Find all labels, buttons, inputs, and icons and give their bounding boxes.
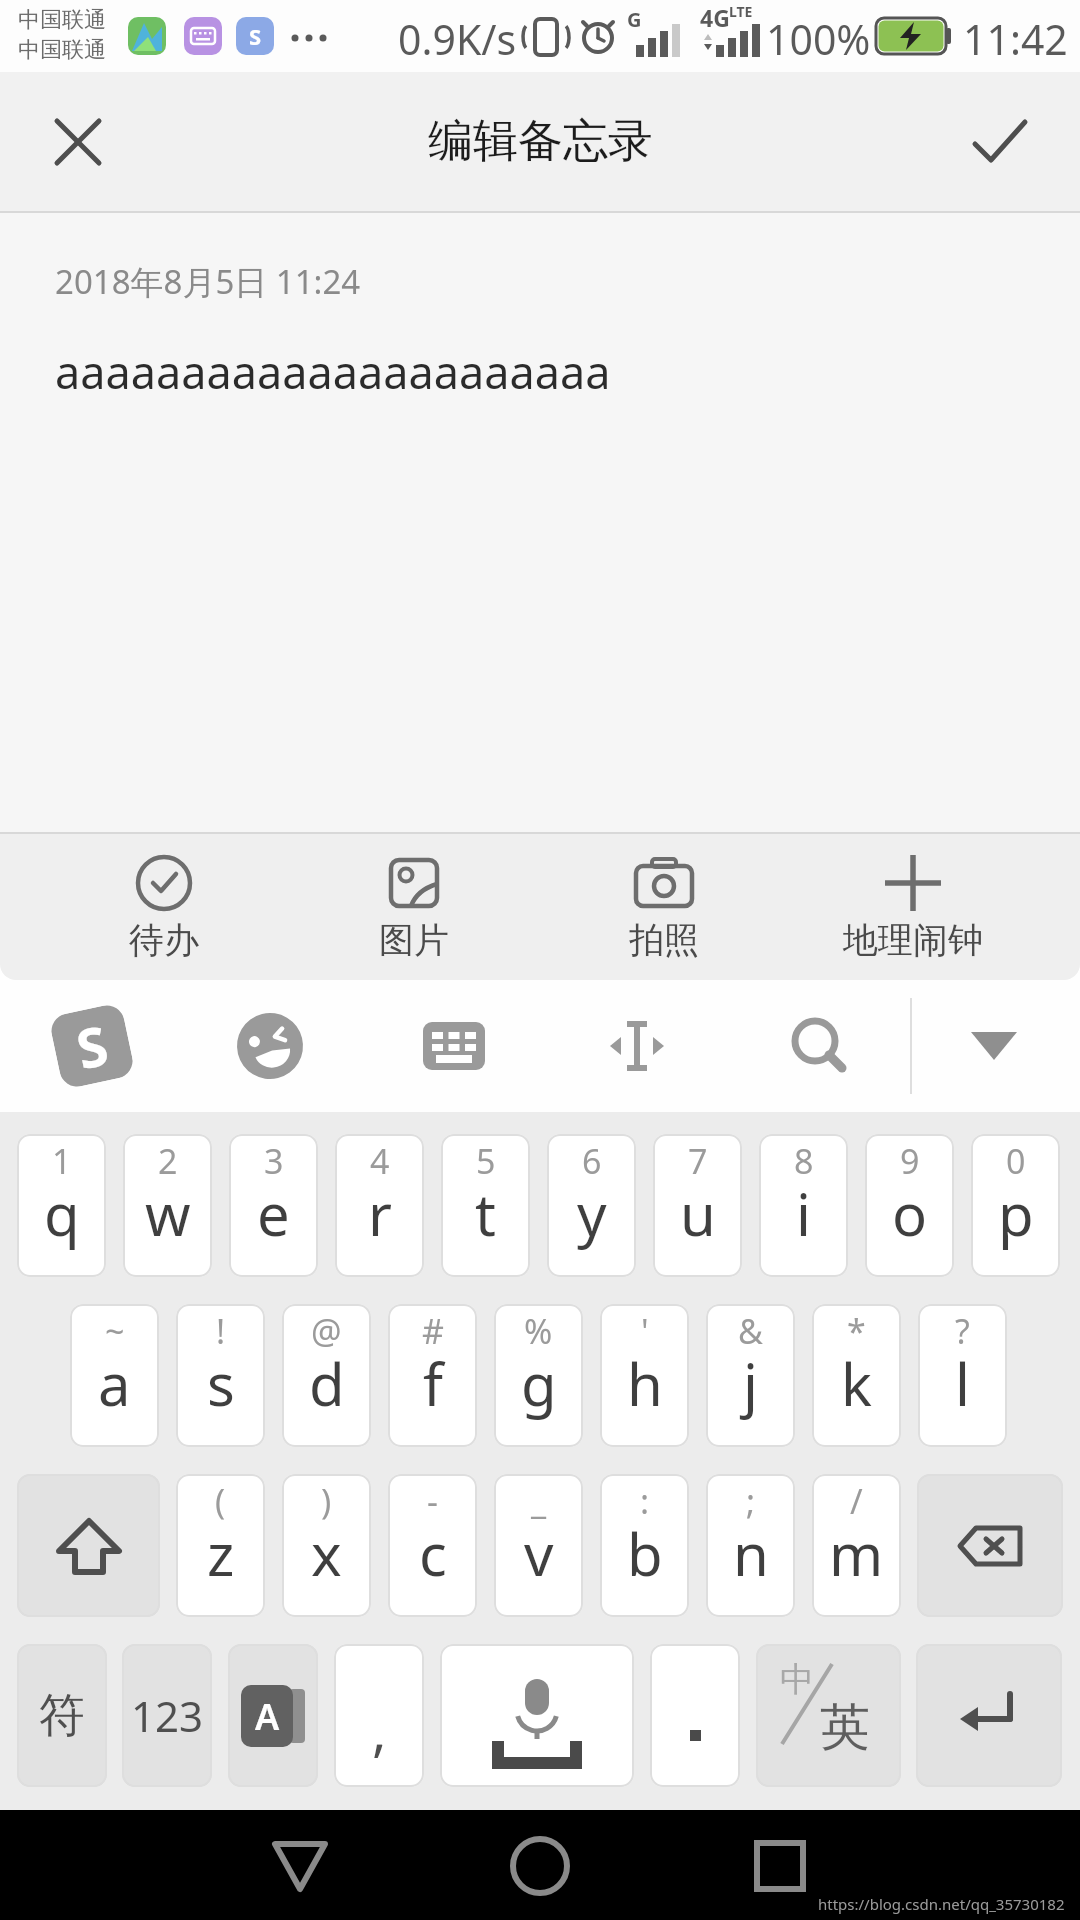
staticText: 4G <box>700 2 730 33</box>
staticText: h <box>627 1344 663 1423</box>
staticText: q <box>44 1174 80 1253</box>
staticText: A <box>255 1692 280 1741</box>
staticText: G <box>627 6 642 33</box>
staticText: & <box>738 1308 763 1354</box>
staticText: ; <box>746 1478 756 1524</box>
staticText: % <box>524 1308 553 1354</box>
staticText: 2 <box>158 1138 178 1184</box>
staticText: ' <box>641 1308 649 1354</box>
staticText: e <box>257 1174 290 1253</box>
staticText: n <box>733 1514 769 1593</box>
staticText: a <box>98 1344 131 1423</box>
staticText: 1 <box>52 1138 72 1184</box>
staticText: 中 <box>780 1658 814 1701</box>
staticText: * <box>847 1308 866 1354</box>
staticText: w <box>145 1174 191 1253</box>
staticText: ! <box>216 1308 226 1354</box>
staticText: 100% <box>766 11 871 67</box>
staticText: 11:42 <box>963 11 1068 67</box>
staticText: 图片 <box>379 918 449 962</box>
staticText: 123 <box>131 1687 204 1744</box>
staticText: 8 <box>794 1138 814 1184</box>
staticText: 待办 <box>129 918 199 962</box>
staticText: ? <box>955 1308 970 1354</box>
staticText: l <box>955 1344 970 1423</box>
staticText: # <box>422 1308 444 1354</box>
staticText: : <box>640 1478 650 1524</box>
staticText: k <box>841 1344 872 1423</box>
staticText: b <box>627 1514 663 1593</box>
staticText: v <box>524 1514 554 1593</box>
staticText: 中国联通 <box>18 36 106 64</box>
staticText: 5 <box>476 1138 496 1184</box>
staticText: f <box>423 1344 443 1423</box>
staticText: u <box>680 1174 716 1253</box>
staticText: t <box>475 1174 496 1253</box>
staticText: r <box>368 1174 392 1253</box>
staticText: i <box>796 1174 811 1253</box>
staticText: 0.9K/s <box>398 11 517 67</box>
staticText: 7 <box>688 1138 708 1184</box>
staticText: p <box>998 1174 1034 1253</box>
staticText: - <box>427 1478 438 1524</box>
staticText: ) <box>321 1478 332 1524</box>
staticText: 9 <box>900 1138 920 1184</box>
staticText: S <box>249 21 262 51</box>
staticText: m <box>829 1514 884 1593</box>
staticText: 符 <box>39 1687 85 1745</box>
staticText: d <box>309 1344 345 1423</box>
staticText: aaaaaaaaaaaaaaaaaaaaaa <box>55 341 611 402</box>
staticText: , <box>372 1693 387 1767</box>
staticText: g <box>521 1344 557 1423</box>
staticText: j <box>743 1344 758 1423</box>
staticText: @ <box>311 1308 342 1354</box>
staticText: 6 <box>582 1138 602 1184</box>
staticText: 拍照 <box>629 918 699 962</box>
staticText: 地理闹钟 <box>843 918 983 962</box>
staticText: 中国联通 <box>18 6 106 34</box>
staticText: z <box>207 1514 235 1593</box>
staticText: x <box>311 1514 342 1593</box>
staticText: / <box>850 1478 863 1524</box>
staticText: 4 <box>370 1138 390 1184</box>
staticText: y <box>577 1174 607 1253</box>
staticText: 英 <box>820 1696 870 1759</box>
staticText: 3 <box>264 1138 284 1184</box>
staticText: 编辑备忘录 <box>428 113 653 170</box>
staticText: ( <box>215 1478 226 1524</box>
staticText: c <box>419 1514 447 1593</box>
staticText: 2018年8月5日 11:24 <box>55 259 361 304</box>
staticText: 0 <box>1006 1138 1026 1184</box>
staticText: s <box>207 1344 235 1423</box>
staticText: S <box>70 1007 114 1085</box>
staticText: LTE <box>729 2 753 21</box>
staticText: _ <box>531 1478 547 1524</box>
staticText: https://blog.csdn.net/qq_35730182 <box>818 1894 1065 1914</box>
staticText: o <box>892 1174 928 1253</box>
staticText: ~ <box>105 1308 125 1354</box>
